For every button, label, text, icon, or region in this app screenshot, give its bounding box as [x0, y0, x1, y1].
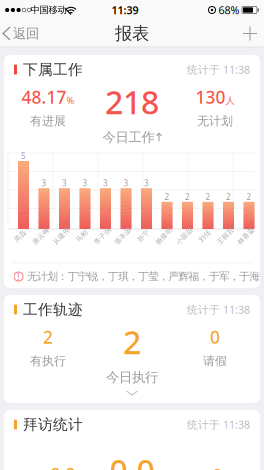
staticText: 唐云峰 — [30, 232, 51, 240]
staticText: 218 — [105, 81, 159, 123]
staticText: 有进展 — [30, 114, 66, 128]
staticText: 无计划：丁宁锐，丁琪，丁莹，严辉福，于军，于海涛，代晓阳 — [27, 270, 264, 283]
staticText: 2 — [205, 191, 210, 202]
staticText: 2 — [185, 191, 190, 202]
staticText: 3 — [144, 178, 149, 188]
staticText: 下属工作 — [23, 60, 83, 78]
staticText: ! — [17, 270, 20, 283]
staticText: 中国移动 — [30, 4, 66, 16]
staticText: 孙宁 — [136, 232, 150, 240]
staticText: 报表 — [115, 23, 149, 44]
staticText: 2 — [123, 321, 141, 363]
staticText: 统计于 11:38 — [187, 302, 250, 317]
button[interactable]: 返回 — [3, 20, 39, 47]
staticText: 0 — [210, 326, 220, 349]
staticText: 从建伟 — [51, 232, 72, 240]
staticText: 3 — [41, 178, 46, 188]
staticText: 0 — [212, 463, 222, 470]
staticText: 2 — [43, 326, 53, 349]
staticText: 返回 — [13, 25, 39, 42]
staticText: 无计划 — [197, 114, 233, 128]
staticText: 马刚 — [75, 232, 89, 240]
staticText: 2 — [246, 191, 251, 202]
staticText: 3 — [123, 178, 128, 188]
staticText: 工作轨迹 — [23, 300, 83, 318]
staticText: 3 — [62, 178, 67, 188]
staticText: 请假 — [203, 354, 227, 368]
staticText: 拜访统计 — [23, 415, 83, 433]
button[interactable]: 添加 — [238, 21, 262, 45]
staticText: 張丰源 — [112, 232, 133, 240]
staticText: % — [66, 94, 74, 106]
staticText: 2 — [164, 191, 169, 202]
staticText: 0.0 — [109, 449, 154, 470]
staticText: 人 — [225, 95, 234, 106]
staticText: 5 — [21, 151, 26, 161]
staticText: 统计于 11:38 — [187, 62, 250, 77]
staticText: 11:39 — [111, 3, 138, 17]
staticText: 王丽芸 — [215, 232, 236, 240]
staticText: 有执行 — [30, 354, 66, 368]
staticText: 周磊 — [13, 232, 27, 240]
staticText: 68% — [218, 3, 239, 17]
staticText: 0.0 — [50, 462, 75, 470]
staticText: 130 — [195, 86, 225, 109]
staticText: 今日执行 — [106, 369, 158, 385]
staticText: 杨俊明 — [153, 232, 174, 240]
staticText: 统计于 11:38 — [187, 417, 250, 432]
staticText: 3 — [103, 178, 108, 188]
staticText: 李子強 — [92, 232, 113, 240]
staticText: 3 — [82, 178, 87, 188]
staticText: 2 — [226, 191, 231, 202]
staticText: 刘佳 — [198, 232, 212, 240]
staticText: 48.17 — [21, 86, 66, 109]
staticText: 林香凝 — [235, 232, 256, 240]
staticText: 小甜甜 — [174, 232, 195, 240]
staticText: 今日工作 — [102, 129, 154, 145]
button[interactable]: 收起 — [122, 387, 141, 399]
